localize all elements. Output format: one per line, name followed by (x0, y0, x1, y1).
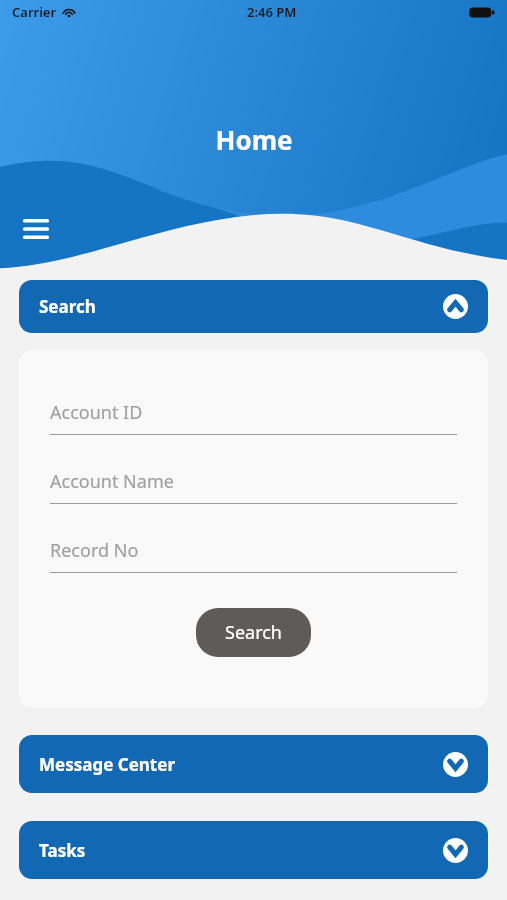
button[interactable]: Search (19, 280, 488, 333)
staticText: Search (225, 620, 282, 645)
staticText: Carrier (12, 3, 57, 21)
staticText: Home (215, 122, 293, 157)
staticText: Tasks (39, 839, 86, 862)
button[interactable]: Search (196, 608, 311, 657)
button[interactable]: Tasks (19, 821, 488, 879)
button[interactable]: Menu (14, 207, 58, 251)
staticText: Search (39, 295, 96, 318)
staticText: 2:46 PM (247, 3, 297, 21)
button[interactable]: Message Center (19, 735, 488, 793)
staticText: Message Center (39, 753, 175, 776)
staticText: Record No (50, 538, 139, 563)
staticText: Account ID (50, 400, 143, 425)
staticText: Account Name (50, 469, 174, 494)
